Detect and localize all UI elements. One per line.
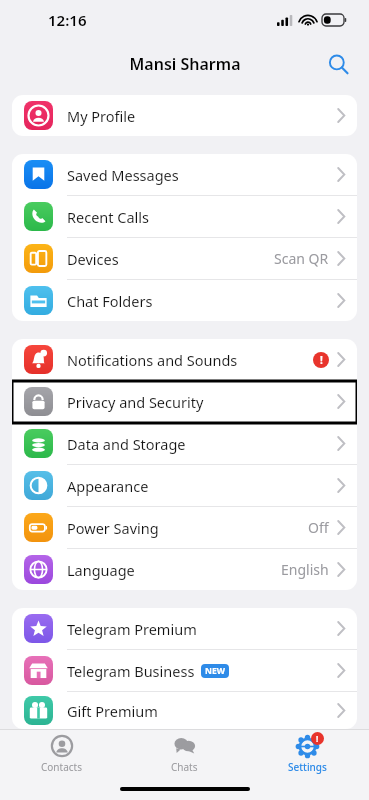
staticText: Recent Calls	[67, 207, 150, 227]
button[interactable]: Language	[12, 549, 357, 590]
staticText: Chats	[171, 760, 198, 774]
staticText: NEW	[205, 665, 225, 677]
button[interactable]: !	[246, 730, 369, 778]
staticText: Telegram Premium	[67, 619, 197, 639]
staticText: !	[316, 733, 319, 744]
button[interactable]: My Profile	[12, 95, 357, 136]
staticText: Settings	[288, 760, 327, 774]
button[interactable]: Chat Folders	[12, 280, 357, 321]
button[interactable]: Saved Messages	[12, 154, 357, 195]
button[interactable]: Telegram Business	[12, 650, 357, 691]
staticText: Data and Storage	[67, 434, 186, 454]
staticText: Contacts	[41, 760, 82, 774]
staticText: Off	[308, 518, 329, 537]
button[interactable]: Power Saving	[12, 507, 357, 548]
button[interactable]: Contacts	[0, 730, 123, 778]
staticText: 12:16	[48, 10, 87, 30]
staticText: Power Saving	[67, 518, 159, 538]
button[interactable]: Notifications and Sounds	[12, 339, 357, 380]
button[interactable]: Data and Storage	[12, 423, 357, 464]
staticText: Appearance	[67, 476, 149, 496]
staticText: Mansi Sharma	[129, 53, 241, 75]
button[interactable]: Appearance	[12, 465, 357, 506]
button[interactable]: Search	[321, 47, 355, 81]
staticText: Notifications and Sounds	[67, 350, 238, 370]
staticText: Saved Messages	[67, 165, 179, 185]
staticText: Scan QR	[274, 249, 329, 268]
staticText: Chat Folders	[67, 291, 153, 311]
button[interactable]: Telegram Premium	[12, 608, 357, 649]
button[interactable]: Gift Premium	[12, 692, 357, 729]
staticText: !	[320, 353, 323, 367]
staticText: Devices	[67, 249, 119, 269]
staticText: Privacy and Security	[67, 392, 204, 412]
staticText: Telegram Business	[67, 661, 195, 681]
staticText: Gift Premium	[67, 701, 158, 721]
button[interactable]: Devices	[12, 238, 357, 279]
button[interactable]: Privacy and Security	[12, 381, 357, 422]
staticText: English	[281, 560, 329, 579]
button[interactable]: Recent Calls	[12, 196, 357, 237]
button[interactable]: Chats	[123, 730, 246, 778]
staticText: Language	[67, 560, 135, 580]
staticText: My Profile	[67, 106, 136, 126]
